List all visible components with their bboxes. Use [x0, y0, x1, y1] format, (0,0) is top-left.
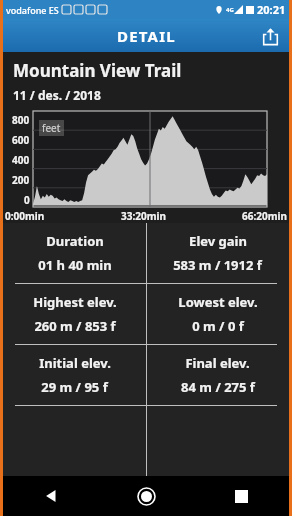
staticText: Duration — [46, 232, 104, 250]
staticText: vodafone ES — [6, 4, 59, 16]
button[interactable]: Elev gain — [146, 223, 289, 283]
staticText: 0:00min — [5, 209, 45, 223]
staticText: Highest elev. — [33, 293, 117, 311]
staticText: Final elev. — [185, 354, 250, 372]
button[interactable]: Highest elev. — [3, 284, 146, 344]
button[interactable]: Recents — [194, 476, 289, 516]
staticText: 33:20min — [121, 209, 166, 223]
button[interactable]: Lowest elev. — [146, 284, 289, 344]
staticText: Initial elev. — [39, 354, 111, 372]
staticText: Lowest elev. — [178, 293, 258, 311]
button[interactable]: Share — [256, 22, 284, 50]
button[interactable]: Home — [99, 476, 194, 516]
staticText: 600 — [12, 133, 30, 147]
staticText: 800 — [12, 113, 30, 127]
staticText: Mountain View Trail — [13, 59, 182, 82]
staticText: 29 m / 95 f — [41, 378, 108, 396]
staticText: 583 m / 1912 f — [173, 256, 262, 274]
staticText: Elev gain — [189, 232, 247, 250]
staticText: 84 m / 275 f — [181, 378, 255, 396]
button[interactable]: Final elev. — [146, 345, 289, 405]
staticText: 0 m / 0 f — [192, 317, 244, 335]
staticText: 4G — [226, 6, 234, 14]
staticText: 01 h 40 min — [38, 256, 112, 274]
staticText: 20:21 — [257, 2, 286, 17]
button[interactable]: Duration — [3, 223, 146, 283]
button[interactable]: Initial elev. — [3, 345, 146, 405]
staticText: feet — [42, 121, 61, 135]
staticText: 200 — [12, 173, 30, 187]
staticText: 11 / des. / 2018 — [13, 87, 101, 103]
staticText: DETAIL — [117, 26, 176, 46]
staticText: 0 — [24, 193, 30, 207]
staticText: 260 m / 853 f — [34, 317, 116, 335]
staticText: 400 — [12, 153, 30, 167]
staticText: 66:20min — [242, 209, 287, 223]
button[interactable]: Back — [3, 476, 99, 516]
